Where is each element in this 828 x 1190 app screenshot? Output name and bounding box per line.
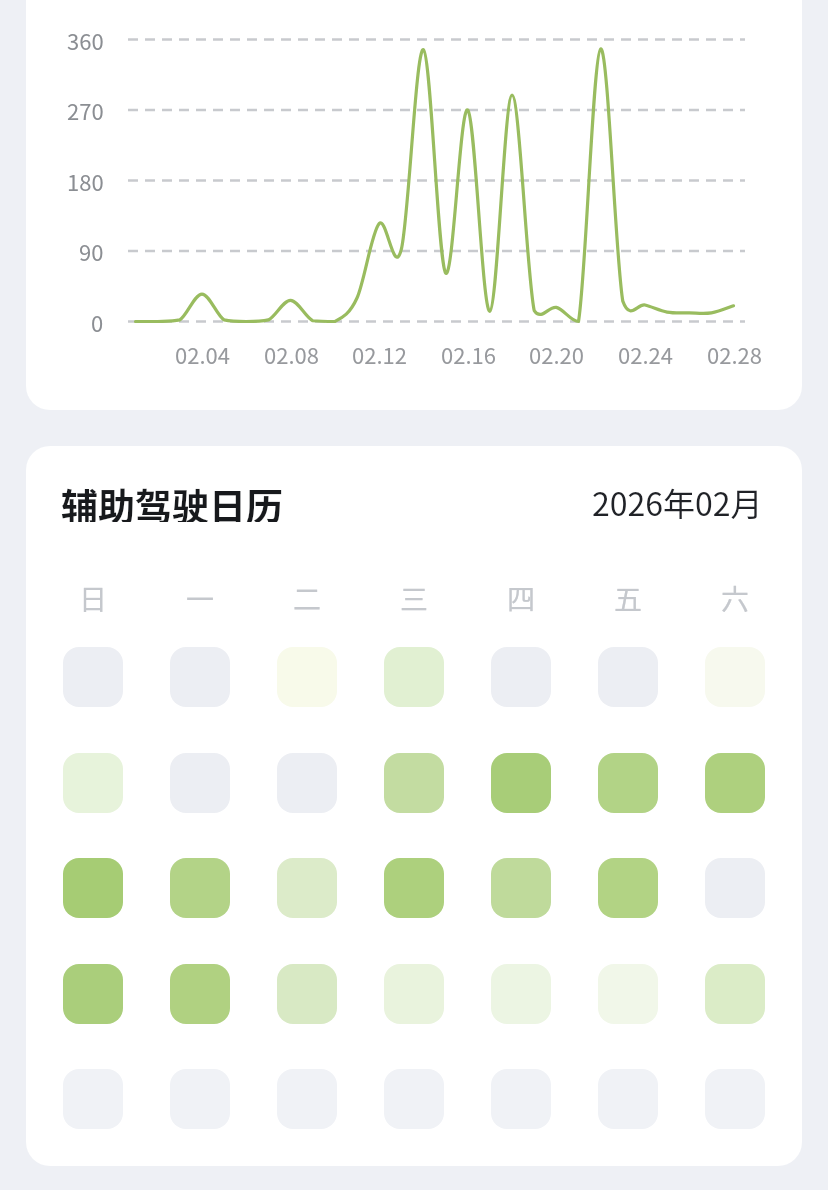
button[interactable] [384, 753, 444, 813]
button[interactable] [384, 1069, 444, 1129]
staticText: 02.20 [529, 338, 584, 370]
button[interactable] [705, 647, 765, 707]
staticText: 日 [79, 578, 108, 612]
button[interactable] [491, 1069, 551, 1129]
button[interactable] [598, 753, 658, 813]
button[interactable] [277, 858, 337, 918]
button[interactable]: 360 [26, 0, 802, 410]
button[interactable] [491, 647, 551, 707]
staticText: 2026年02月 [592, 479, 763, 519]
staticText: 0 [91, 306, 104, 338]
button[interactable]: 辅助驾驶日历 [26, 446, 802, 1166]
button[interactable] [63, 1069, 123, 1129]
staticText: 一 [186, 578, 215, 612]
button[interactable] [170, 753, 230, 813]
button[interactable] [705, 753, 765, 813]
button[interactable] [277, 964, 337, 1024]
button[interactable] [491, 964, 551, 1024]
staticText: 360 [67, 24, 104, 56]
button[interactable] [63, 858, 123, 918]
button[interactable] [598, 1069, 658, 1129]
button[interactable] [598, 647, 658, 707]
button[interactable] [384, 964, 444, 1024]
staticText: 02.28 [707, 338, 762, 370]
button[interactable] [491, 753, 551, 813]
staticText: 三 [400, 578, 429, 612]
button[interactable] [63, 753, 123, 813]
button[interactable] [63, 964, 123, 1024]
staticText: 五 [614, 578, 643, 612]
button[interactable] [277, 647, 337, 707]
button[interactable] [705, 1069, 765, 1129]
button[interactable] [598, 964, 658, 1024]
staticText: 02.16 [441, 338, 496, 370]
button[interactable] [384, 858, 444, 918]
button[interactable] [170, 647, 230, 707]
staticText: 辅助驾驶日历 [61, 478, 283, 522]
staticText: 02.24 [618, 338, 673, 370]
button[interactable] [598, 858, 658, 918]
button[interactable] [277, 1069, 337, 1129]
button[interactable] [384, 647, 444, 707]
staticText: 180 [67, 165, 104, 197]
staticText: 四 [507, 578, 536, 612]
button[interactable] [705, 858, 765, 918]
button[interactable] [705, 964, 765, 1024]
button[interactable] [63, 647, 123, 707]
staticText: 六 [721, 578, 750, 612]
button[interactable] [277, 753, 337, 813]
button[interactable] [170, 858, 230, 918]
button[interactable] [170, 964, 230, 1024]
staticText: 二 [293, 578, 322, 612]
staticText: 02.04 [175, 338, 230, 370]
button[interactable] [491, 858, 551, 918]
staticText: 90 [79, 235, 104, 267]
staticText: 270 [67, 94, 104, 126]
staticText: 02.12 [352, 338, 407, 370]
staticText: 02.08 [264, 338, 319, 370]
button[interactable] [170, 1069, 230, 1129]
